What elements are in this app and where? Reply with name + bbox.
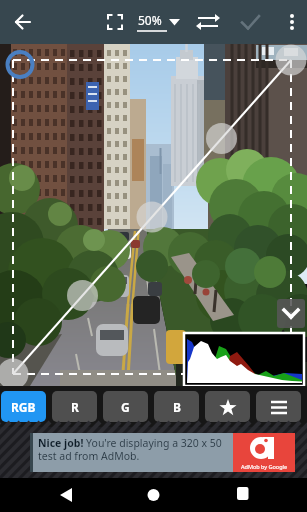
button[interactable]: Nice job! You're displaying a 320 x 50 t… [30, 433, 295, 472]
staticText: R [71, 399, 79, 415]
button[interactable] [97, 4, 133, 40]
staticText: AdMob by Google [241, 463, 288, 470]
button[interactable] [48, 478, 84, 512]
button[interactable] [256, 391, 301, 422]
button[interactable] [277, 299, 305, 328]
button[interactable] [135, 478, 171, 512]
button[interactable] [190, 4, 226, 40]
button[interactable]: RGB [1, 391, 46, 422]
button[interactable]: G [103, 391, 148, 422]
staticText: RGB [11, 399, 36, 415]
button[interactable]: R [52, 391, 97, 422]
button[interactable]: B [154, 391, 199, 422]
button[interactable] [232, 4, 268, 40]
button[interactable] [278, 4, 306, 40]
staticText: 50% [138, 12, 162, 28]
staticText: Nice job! You're displaying a 320 x 50 t… [38, 436, 233, 463]
button[interactable] [224, 478, 260, 512]
staticText: G [121, 399, 130, 415]
button[interactable] [205, 391, 250, 422]
button[interactable]: 50% [134, 6, 184, 38]
button[interactable] [5, 4, 41, 40]
staticText: B [173, 399, 181, 415]
